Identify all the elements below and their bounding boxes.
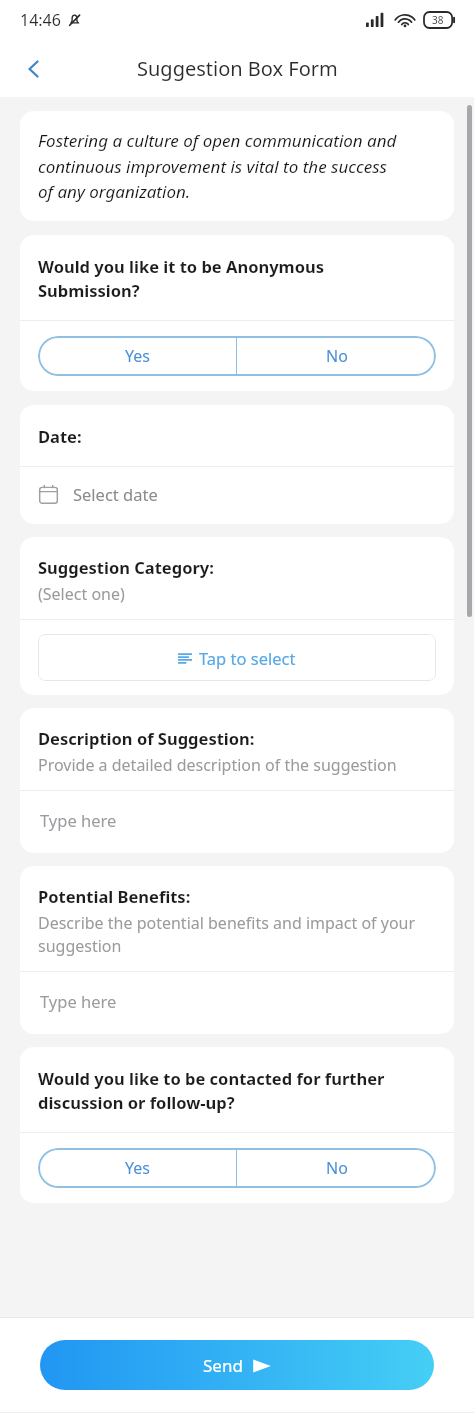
button[interactable]: No [237,336,436,376]
button[interactable]: Yes [38,1148,236,1188]
staticText: Would you like to be contacted for furth… [38,1067,385,1114]
staticText: Provide a detailed description of the su… [38,754,397,776]
staticText: Tap to select [199,647,296,669]
staticText: 14:46 [20,9,61,31]
staticText: Type here [40,809,117,831]
button[interactable]: Back [10,45,58,93]
staticText: Yes [125,1157,150,1179]
staticText: (Select one) [38,583,125,605]
staticText: Suggestion Category: [38,556,214,578]
staticText: 38 [432,13,444,27]
button[interactable]: No [237,1148,436,1188]
button[interactable]: Type here [20,972,454,1034]
staticText: Would you like it to be Anonymous Submis… [38,255,324,302]
staticText: Send [203,1354,243,1377]
staticText: Type here [40,990,117,1012]
staticText: Potential Benefits: [38,885,191,907]
staticText: No [326,1157,348,1179]
button[interactable]: Type here [20,791,454,853]
staticText: No [326,345,348,367]
staticText: Describe the potential benefits and impa… [38,912,416,957]
staticText: Yes [125,345,150,367]
staticText: Description of Suggestion: [38,727,255,749]
button[interactable]: Tap to select [38,634,436,681]
staticText: Select date [73,483,158,505]
staticText: Date: [38,425,82,447]
button[interactable]: Yes [38,336,236,376]
staticText: Fostering a culture of open communicatio… [38,129,397,203]
staticText: Suggestion Box Form [137,55,338,82]
button[interactable]: Select date [20,467,454,524]
button[interactable]: Send [40,1340,434,1390]
